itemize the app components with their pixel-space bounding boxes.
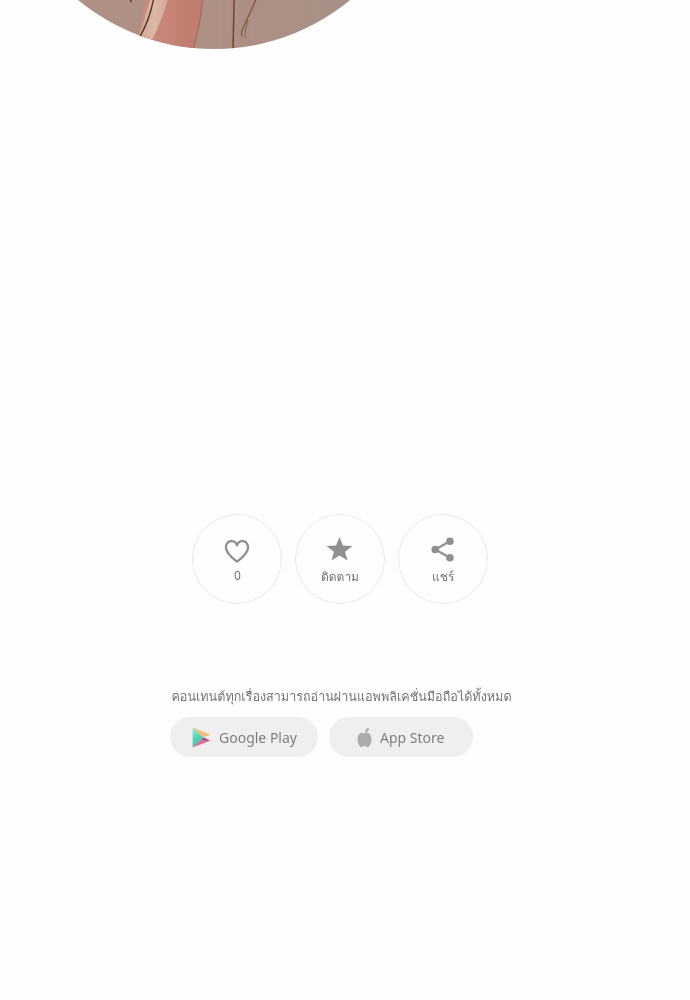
staticText: App Store [380, 728, 445, 747]
staticText: ติดตาม [321, 567, 360, 586]
button[interactable]: Follow [295, 514, 385, 604]
staticText: Google Play [219, 728, 297, 747]
button[interactable]: Like [192, 514, 282, 604]
button[interactable]: App Store [329, 717, 473, 757]
staticText: แชร์ [432, 567, 455, 586]
staticText: คอนเทนต์ทุกเรื่องสามารถอ่านผ่านแอพพลิเคช… [171, 687, 512, 707]
button[interactable]: Google Play [170, 717, 318, 757]
button[interactable]: Share [398, 514, 488, 604]
staticText: 0 [234, 567, 241, 583]
